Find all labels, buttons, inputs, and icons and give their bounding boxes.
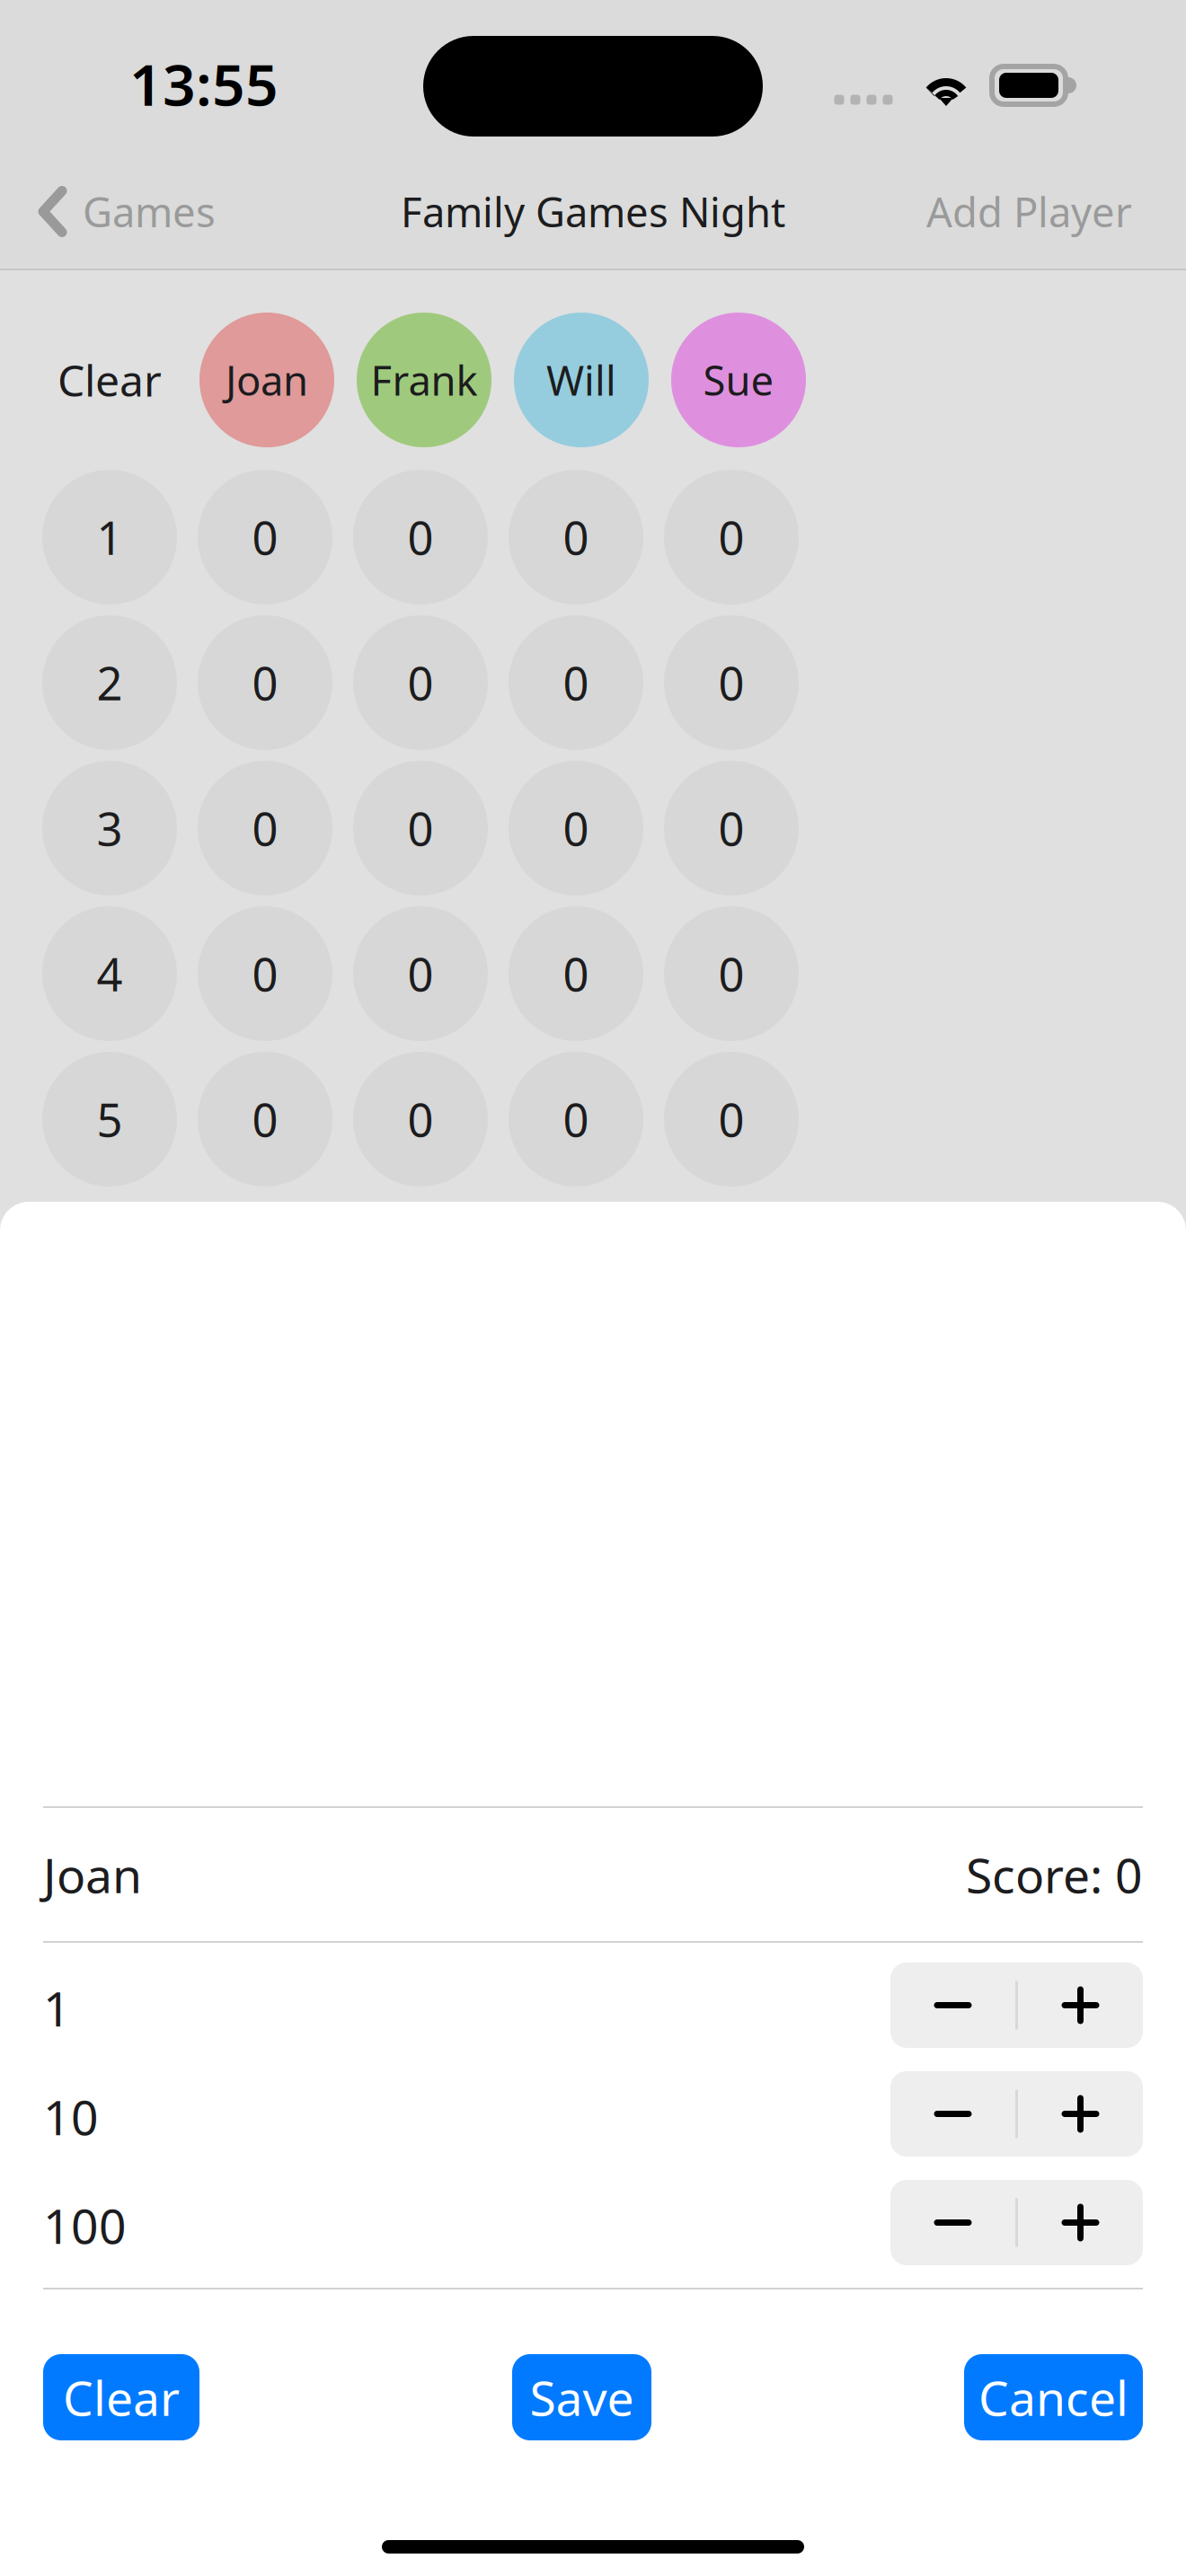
staticText: Family Games Night: [401, 184, 785, 239]
button[interactable]: 4: [42, 906, 177, 1041]
button[interactable]: Increase: [1018, 2180, 1143, 2265]
button[interactable]: 0: [353, 1052, 488, 1187]
staticText: 0: [252, 798, 278, 858]
button[interactable]: 0: [198, 615, 332, 750]
button[interactable]: 0: [509, 470, 643, 604]
button[interactable]: 0: [509, 1052, 643, 1187]
staticText: Clear: [58, 351, 162, 408]
staticText: Add Player: [926, 184, 1132, 239]
staticText: Games: [83, 184, 216, 239]
staticText: 0: [407, 507, 434, 567]
staticText: 2: [97, 652, 123, 713]
button[interactable]: 0: [664, 470, 799, 604]
staticText: Cancel: [978, 2365, 1128, 2429]
button[interactable]: 0: [353, 761, 488, 895]
staticText: Joan: [226, 353, 308, 407]
button[interactable]: Add Player: [926, 176, 1186, 255]
staticText: 0: [252, 652, 278, 713]
button[interactable]: 0: [353, 906, 488, 1041]
button[interactable]: Cancel: [964, 2354, 1143, 2440]
staticText: Save: [530, 2365, 634, 2429]
staticText: 0: [563, 507, 589, 567]
button[interactable]: Games: [0, 176, 216, 255]
button[interactable]: 0: [198, 906, 332, 1041]
staticText: 0: [563, 652, 589, 713]
staticText: 0: [252, 507, 278, 567]
staticText: 13:55: [129, 45, 279, 122]
staticText: 0: [252, 943, 278, 1004]
button[interactable]: 3: [42, 761, 177, 895]
button[interactable]: 1: [42, 470, 177, 604]
staticText: 4: [97, 943, 123, 1004]
button[interactable]: 5: [42, 1052, 177, 1187]
button[interactable]: 0: [664, 761, 799, 895]
staticText: 0: [407, 1089, 434, 1149]
staticText: Will: [546, 353, 616, 407]
staticText: 0: [718, 507, 744, 567]
staticText: 5: [97, 1089, 123, 1149]
staticText: 0: [252, 1089, 278, 1149]
staticText: 100: [43, 2193, 127, 2257]
button[interactable]: Decrease: [890, 1963, 1015, 2048]
button[interactable]: 0: [509, 761, 643, 895]
button[interactable]: Frank: [357, 313, 491, 447]
button[interactable]: Decrease: [890, 2071, 1015, 2157]
staticText: Score: 0: [966, 1843, 1143, 1906]
staticText: Joan: [43, 1843, 142, 1906]
button[interactable]: Clear: [43, 2354, 199, 2440]
staticText: Clear: [63, 2365, 180, 2429]
staticText: 1: [43, 1976, 71, 2040]
button[interactable]: 0: [198, 470, 332, 604]
button[interactable]: Will: [514, 313, 649, 447]
staticText: 10: [43, 2085, 99, 2148]
button[interactable]: 0: [353, 470, 488, 604]
staticText: 0: [407, 798, 434, 858]
button[interactable]: 0: [353, 615, 488, 750]
staticText: Sue: [703, 353, 774, 407]
staticText: 0: [718, 798, 744, 858]
staticText: 0: [718, 1089, 744, 1149]
button[interactable]: Save: [512, 2354, 651, 2440]
button[interactable]: 0: [198, 761, 332, 895]
button[interactable]: 0: [198, 1052, 332, 1187]
button[interactable]: Increase: [1018, 1963, 1143, 2048]
staticText: 1: [97, 507, 123, 567]
button[interactable]: Increase: [1018, 2071, 1143, 2157]
button[interactable]: 0: [664, 906, 799, 1041]
staticText: 3: [97, 798, 123, 858]
button[interactable]: 0: [664, 615, 799, 750]
button[interactable]: Decrease: [890, 2180, 1015, 2265]
button[interactable]: Joan: [199, 313, 334, 447]
staticText: 0: [563, 943, 589, 1004]
button[interactable]: 0: [664, 1052, 799, 1187]
button[interactable]: 0: [509, 615, 643, 750]
button[interactable]: Sue: [671, 313, 806, 447]
staticText: 0: [718, 943, 744, 1004]
staticText: 0: [718, 652, 744, 713]
button[interactable]: Clear: [42, 313, 177, 447]
staticText: 0: [407, 943, 434, 1004]
staticText: 0: [563, 798, 589, 858]
staticText: Frank: [371, 353, 478, 407]
button[interactable]: 2: [42, 615, 177, 750]
staticText: 0: [563, 1089, 589, 1149]
button[interactable]: 0: [509, 906, 643, 1041]
staticText: 0: [407, 652, 434, 713]
